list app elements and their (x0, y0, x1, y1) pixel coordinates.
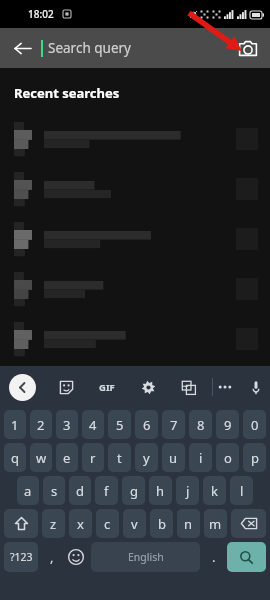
button[interactable]: 7 (162, 410, 185, 439)
button[interactable]: c (96, 509, 119, 538)
button[interactable]: 2 (30, 410, 52, 439)
staticText: h (156, 482, 165, 500)
staticText: 3 (63, 416, 71, 434)
staticText: y (143, 449, 150, 467)
staticText: u (169, 449, 178, 467)
button[interactable]: English (91, 542, 200, 572)
button[interactable]: t (108, 443, 131, 472)
staticText: 18:02 (28, 7, 54, 21)
staticText: 8 (197, 416, 205, 434)
button[interactable]: 6 (135, 410, 158, 439)
button[interactable]: Backspace (231, 509, 266, 538)
button[interactable]: u (162, 443, 185, 472)
staticText: r (90, 449, 96, 467)
button[interactable]: r (82, 443, 104, 472)
staticText: 0 (251, 416, 259, 434)
button[interactable]: x (69, 509, 92, 538)
button[interactable]: z (42, 509, 65, 538)
button[interactable]: m (204, 509, 227, 538)
button[interactable]: Emoji (65, 542, 87, 572)
button[interactable]: d (69, 476, 91, 505)
staticText: c (104, 515, 111, 533)
button[interactable]: i (189, 443, 212, 472)
staticText: t (117, 449, 122, 467)
button[interactable]: h (149, 476, 172, 505)
staticText: , (50, 548, 54, 566)
staticText: o (224, 449, 232, 467)
staticText: m (209, 515, 222, 533)
staticText: 1 (11, 416, 19, 434)
button[interactable]: GIF (94, 374, 120, 400)
staticText: ?123 (10, 550, 33, 564)
staticText: 4 (89, 416, 97, 434)
button[interactable]: . (204, 542, 223, 572)
staticText: d (76, 482, 84, 500)
staticText: English (128, 550, 164, 564)
button[interactable] (0, 314, 270, 364)
button[interactable]: q (4, 443, 26, 472)
button[interactable]: Voice input (251, 375, 261, 399)
button[interactable]: ?123 (4, 542, 38, 572)
button[interactable]: Search (227, 542, 266, 572)
button[interactable] (0, 164, 270, 214)
staticText: 5 (116, 416, 124, 434)
button[interactable]: 1 (4, 410, 26, 439)
button[interactable]: Back (6, 32, 38, 64)
button[interactable]: 5 (108, 410, 131, 439)
button[interactable]: o (216, 443, 239, 472)
button[interactable] (0, 214, 270, 264)
button[interactable]: , (42, 542, 61, 572)
staticText: 6 (143, 416, 151, 434)
staticText: e (63, 449, 71, 467)
staticText: w (36, 449, 47, 467)
staticText: a (24, 482, 32, 500)
staticText: j (186, 482, 190, 500)
button[interactable]: Settings (136, 375, 160, 399)
button[interactable]: 0 (243, 410, 266, 439)
staticText: 2 (37, 416, 45, 434)
button[interactable] (0, 114, 270, 164)
button[interactable]: e (56, 443, 78, 472)
button[interactable]: g (122, 476, 145, 505)
staticText: x (77, 515, 84, 533)
staticText: z (50, 515, 57, 533)
button[interactable] (0, 264, 270, 314)
button[interactable]: v (123, 509, 146, 538)
button[interactable]: Stickers (54, 375, 78, 399)
staticText: GIF (99, 381, 115, 394)
staticText: f (104, 482, 109, 500)
staticText: v (131, 515, 138, 533)
button[interactable]: 9 (216, 410, 239, 439)
staticText: Recent searches (14, 84, 120, 102)
button[interactable]: p (243, 443, 266, 472)
staticText: n (184, 515, 193, 533)
staticText: p (251, 449, 259, 467)
button[interactable]: f (95, 476, 118, 505)
button[interactable]: k (203, 476, 226, 505)
staticText: b (158, 515, 166, 533)
button[interactable]: Search with camera (233, 33, 263, 63)
button[interactable]: Shift (4, 509, 38, 538)
staticText: Search query (48, 39, 131, 57)
button[interactable]: w (30, 443, 52, 472)
button[interactable]: Translate (176, 375, 200, 399)
button[interactable]: j (176, 476, 199, 505)
staticText: k (211, 482, 218, 500)
staticText: s (51, 482, 58, 500)
button[interactable]: y (135, 443, 158, 472)
button[interactable]: s (43, 476, 65, 505)
staticText: 9 (224, 416, 232, 434)
button[interactable]: n (177, 509, 200, 538)
button[interactable]: a (17, 476, 39, 505)
staticText: . (212, 548, 216, 566)
button[interactable]: More options (213, 375, 237, 399)
button[interactable]: Back (9, 374, 36, 401)
button[interactable]: 4 (82, 410, 104, 439)
button[interactable]: 3 (56, 410, 78, 439)
button[interactable]: b (150, 509, 173, 538)
staticText: q (11, 449, 19, 467)
button[interactable]: 8 (189, 410, 212, 439)
staticText: i (199, 449, 203, 467)
staticText: 7 (170, 416, 178, 434)
button[interactable]: l (230, 476, 253, 505)
